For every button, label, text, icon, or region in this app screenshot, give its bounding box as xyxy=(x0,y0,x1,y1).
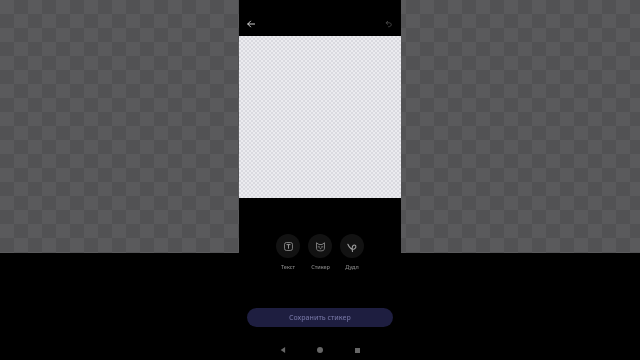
button[interactable]: Back xyxy=(239,12,263,36)
button[interactable]: Сохранить стикер xyxy=(247,308,393,327)
staticText: Дудл xyxy=(345,263,359,270)
staticText: Сохранить стикер xyxy=(289,313,351,323)
button[interactable]: Home xyxy=(310,340,330,360)
staticText: Стикер xyxy=(311,263,330,270)
button[interactable]: Дудл xyxy=(340,234,364,270)
button[interactable]: Undo xyxy=(377,12,401,36)
button[interactable]: Back xyxy=(273,340,293,360)
button[interactable]: Стикер xyxy=(308,234,332,270)
button[interactable]: Текст xyxy=(276,234,300,270)
staticText: Текст xyxy=(281,263,295,270)
button[interactable]: Recents xyxy=(347,340,367,360)
